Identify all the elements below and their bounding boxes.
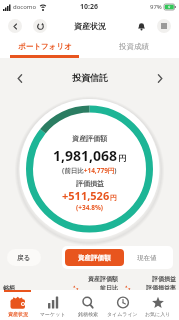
staticText: 投資信託 (72, 72, 108, 83)
button[interactable] (154, 72, 166, 84)
button[interactable]: マーケット (35, 290, 70, 320)
staticText: ポートフォリオ (18, 42, 72, 51)
button[interactable]: 現在値 (124, 249, 170, 266)
staticText: 前日比 (100, 284, 118, 290)
staticText: 円 (118, 153, 126, 163)
staticText: 資産評価額 (72, 134, 107, 143)
button[interactable]: タイムライン (105, 290, 140, 320)
staticText: 評価損益 (152, 275, 176, 283)
button[interactable]: 戻る (7, 249, 41, 266)
staticText: 投資成績 (119, 42, 149, 51)
button[interactable]: お気に入り (140, 290, 175, 320)
staticText: 資産状況 (74, 21, 106, 31)
staticText: 評価損益率 (146, 284, 176, 290)
button[interactable] (33, 19, 47, 33)
staticText: 現在値 (137, 254, 157, 262)
button[interactable] (157, 19, 171, 33)
staticText: 銘柄検索 (78, 311, 98, 317)
button[interactable]: 資産評価額 (65, 249, 124, 266)
staticText: (+34.8%) (76, 203, 103, 212)
staticText: 97% (150, 3, 162, 11)
button[interactable]: 資産状況 (0, 290, 35, 320)
staticText: 資産評価額 (88, 275, 118, 283)
staticText: 銘柄 (3, 284, 15, 290)
staticText: (前日比+14,779円) (62, 166, 117, 175)
button[interactable]: 投資成績 (89, 38, 179, 55)
button[interactable] (8, 19, 22, 33)
button[interactable]: 銘柄検索 (70, 290, 105, 320)
staticText: 評価損益 (76, 179, 104, 188)
button[interactable]: ポートフォリオ (0, 38, 89, 55)
staticText: 戻る (17, 254, 31, 262)
staticText: +511,526 (62, 188, 110, 203)
staticText: 10:26 (80, 2, 98, 12)
staticText: お気に入り (145, 311, 171, 317)
button[interactable] (14, 72, 26, 84)
staticText: docomo (13, 3, 37, 11)
button[interactable] (134, 19, 148, 33)
staticText: 円 (110, 193, 117, 202)
staticText: 1,981,068 (53, 146, 118, 165)
staticText: 資産状況 (8, 311, 28, 317)
staticText: タイムライン (107, 311, 138, 317)
staticText: 資産評価額 (78, 254, 111, 262)
staticText: マーケット (40, 311, 66, 317)
